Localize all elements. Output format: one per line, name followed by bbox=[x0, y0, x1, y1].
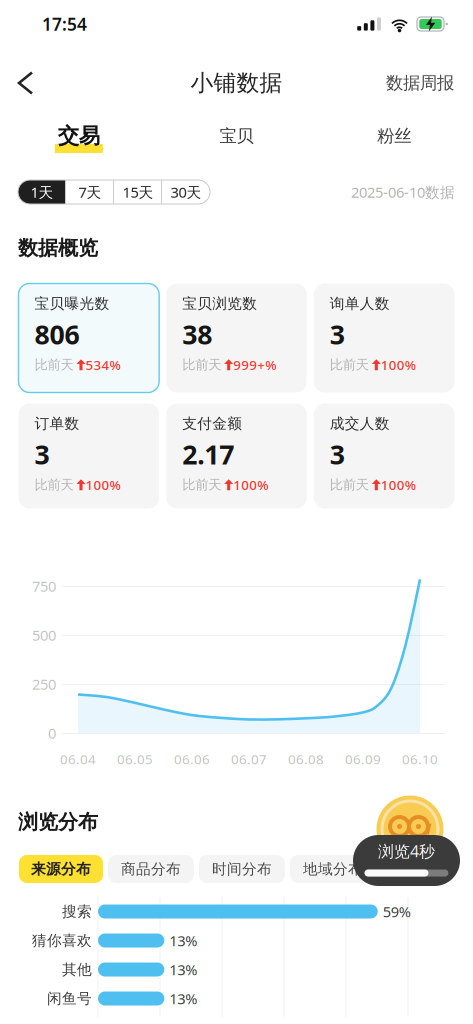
staticText: 2025-06-10数据 bbox=[351, 182, 455, 202]
button[interactable]: 时间分布 bbox=[199, 855, 285, 883]
staticText: 0 bbox=[48, 723, 56, 743]
staticText: 3 bbox=[330, 316, 345, 352]
staticText: 13% bbox=[169, 931, 197, 950]
staticText: 806 bbox=[34, 316, 79, 352]
button[interactable]: 交易 bbox=[0, 114, 158, 158]
staticText: 数据概览 bbox=[18, 236, 98, 260]
staticText: 3 bbox=[330, 436, 345, 472]
button[interactable]: 7天 bbox=[66, 180, 114, 204]
staticText: 2.17 bbox=[182, 436, 234, 472]
staticText: 比前天 bbox=[34, 477, 73, 493]
staticText: 比前天 bbox=[330, 357, 369, 373]
button[interactable]: 30天 bbox=[162, 180, 210, 204]
staticText: 7天 bbox=[78, 182, 101, 202]
button[interactable]: 宝贝浏览数 bbox=[166, 283, 307, 392]
staticText: 比前天 bbox=[182, 357, 221, 373]
button[interactable]: 宝贝曝光数 bbox=[18, 283, 159, 392]
staticText: 粉丝 bbox=[377, 125, 411, 147]
staticText: 3 bbox=[34, 436, 49, 472]
staticText: 比前天 bbox=[182, 477, 221, 493]
button[interactable]: 询单人数 bbox=[314, 283, 454, 392]
staticText: 数据周报 bbox=[386, 72, 454, 94]
staticText: 100% bbox=[233, 476, 268, 494]
staticText: 06.05 bbox=[117, 750, 153, 768]
staticText: 小铺数据 bbox=[190, 69, 282, 97]
staticText: 来源分布 bbox=[31, 860, 91, 878]
staticText: 成交人数 bbox=[330, 414, 390, 432]
staticText: 比前天 bbox=[34, 357, 73, 373]
staticText: 宝贝曝光数 bbox=[34, 294, 109, 312]
button[interactable]: 15天 bbox=[114, 180, 162, 204]
staticText: 100% bbox=[381, 476, 416, 494]
staticText: 100% bbox=[85, 476, 120, 494]
staticText: 30天 bbox=[170, 182, 201, 202]
staticText: 06.10 bbox=[402, 750, 438, 768]
staticText: 宝贝浏览数 bbox=[182, 294, 257, 312]
button[interactable]: 来源分布 bbox=[19, 855, 103, 883]
button[interactable]: 宝贝 bbox=[158, 114, 315, 158]
staticText: 750 bbox=[32, 576, 56, 596]
staticText: 浏览分布 bbox=[18, 810, 98, 834]
staticText: 06.06 bbox=[174, 750, 210, 768]
staticText: 支付金额 bbox=[182, 414, 242, 432]
staticText: 06.04 bbox=[60, 750, 96, 768]
staticText: 13% bbox=[169, 989, 197, 1008]
button[interactable]: 支付金额 bbox=[166, 403, 307, 508]
staticText: 500 bbox=[32, 625, 56, 645]
staticText: 250 bbox=[32, 674, 56, 694]
staticText: 534% bbox=[85, 356, 120, 374]
staticText: 13% bbox=[169, 960, 197, 979]
staticText: 浏览4秒 bbox=[378, 840, 435, 862]
button[interactable]: 粉丝 bbox=[315, 114, 473, 158]
button[interactable]: 订单数 bbox=[18, 403, 159, 508]
staticText: 订单数 bbox=[34, 414, 79, 432]
staticText: 38 bbox=[182, 316, 212, 352]
staticText: 1天 bbox=[30, 182, 53, 202]
staticText: 宝贝 bbox=[219, 125, 253, 147]
button[interactable]: 地域分布 bbox=[290, 855, 376, 883]
staticText: 闲鱼号 bbox=[47, 989, 92, 1007]
staticText: 交易 bbox=[58, 123, 100, 149]
button[interactable]: 成交人数 bbox=[314, 403, 454, 508]
staticText: 询单人数 bbox=[330, 294, 390, 312]
staticText: 17:54 bbox=[42, 12, 87, 35]
staticText: 59% bbox=[383, 902, 411, 921]
button[interactable]: 1天 bbox=[18, 180, 66, 204]
staticText: 搜索 bbox=[62, 902, 92, 920]
staticText: 06.09 bbox=[345, 750, 381, 768]
staticText: 比前天 bbox=[330, 477, 369, 493]
button[interactable]: 返回 bbox=[0, 60, 46, 105]
staticText: 地域分布 bbox=[303, 860, 363, 878]
staticText: 商品分布 bbox=[121, 860, 181, 878]
button[interactable]: 数据周报 bbox=[372, 62, 473, 104]
staticText: 猜你喜欢 bbox=[32, 931, 92, 949]
staticText: 其他 bbox=[62, 960, 92, 978]
button[interactable]: 商品分布 bbox=[108, 855, 194, 883]
staticText: 06.08 bbox=[288, 750, 324, 768]
staticText: 100% bbox=[381, 356, 416, 374]
staticText: 06.07 bbox=[231, 750, 267, 768]
staticText: 15天 bbox=[122, 182, 153, 202]
staticText: 时间分布 bbox=[212, 860, 272, 878]
staticText: 999+% bbox=[233, 356, 276, 374]
